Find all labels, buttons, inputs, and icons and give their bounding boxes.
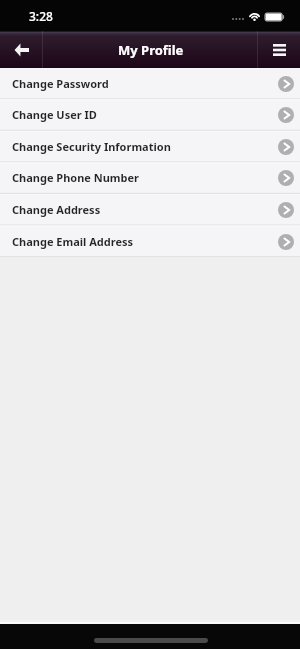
staticText: My Profile xyxy=(118,41,184,59)
button[interactable]: Change Address xyxy=(0,194,300,226)
staticText: Change Email Address xyxy=(12,234,134,249)
button[interactable]: Change Security Information xyxy=(0,131,300,163)
button[interactable]: Menu xyxy=(258,31,300,68)
button[interactable]: Back xyxy=(0,31,42,68)
staticText: Change Security Information xyxy=(12,139,171,154)
staticText: Change User ID xyxy=(12,107,97,122)
staticText: Change Address xyxy=(12,202,101,217)
button[interactable]: Change Password xyxy=(0,68,300,100)
button[interactable]: Change Phone Number xyxy=(0,162,300,194)
staticText: Change Password xyxy=(12,76,109,91)
staticText: 3:28 xyxy=(29,8,53,24)
staticText: Change Phone Number xyxy=(12,170,140,185)
button[interactable]: Change Email Address xyxy=(0,226,300,258)
button[interactable]: Change User ID xyxy=(0,99,300,131)
